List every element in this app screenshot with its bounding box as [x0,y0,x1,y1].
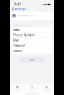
button[interactable]: Home [10,85,25,93]
button[interactable]: Settings [10,6,26,11]
button[interactable]: Phone Number [12,33,52,38]
button[interactable]: Email [12,38,52,43]
staticText: Search [29,88,35,90]
staticText: appleseed@icloud.com [17,15,33,17]
button[interactable]: Name [12,27,52,32]
staticText: Settings [14,7,25,11]
staticText: ACCOUNT DETAILS [13,24,26,26]
button[interactable]: Devices [12,48,52,54]
staticText: Account [44,88,50,90]
staticText: Home [15,88,19,90]
staticText: Devices [13,49,22,53]
staticText: 9:41 [14,3,21,6]
staticText: Phone Number [13,33,35,37]
button[interactable]: Sign Out [19,57,45,63]
button[interactable]: Search [25,85,39,93]
staticText: Email [13,39,19,42]
staticText: Sign Out [29,59,34,61]
button[interactable]: appleseed@icloud.com [10,12,54,20]
button[interactable]: Password [12,43,52,48]
button[interactable]: Account [39,85,54,93]
staticText: Name [13,28,20,32]
staticText: Password [13,44,25,47]
